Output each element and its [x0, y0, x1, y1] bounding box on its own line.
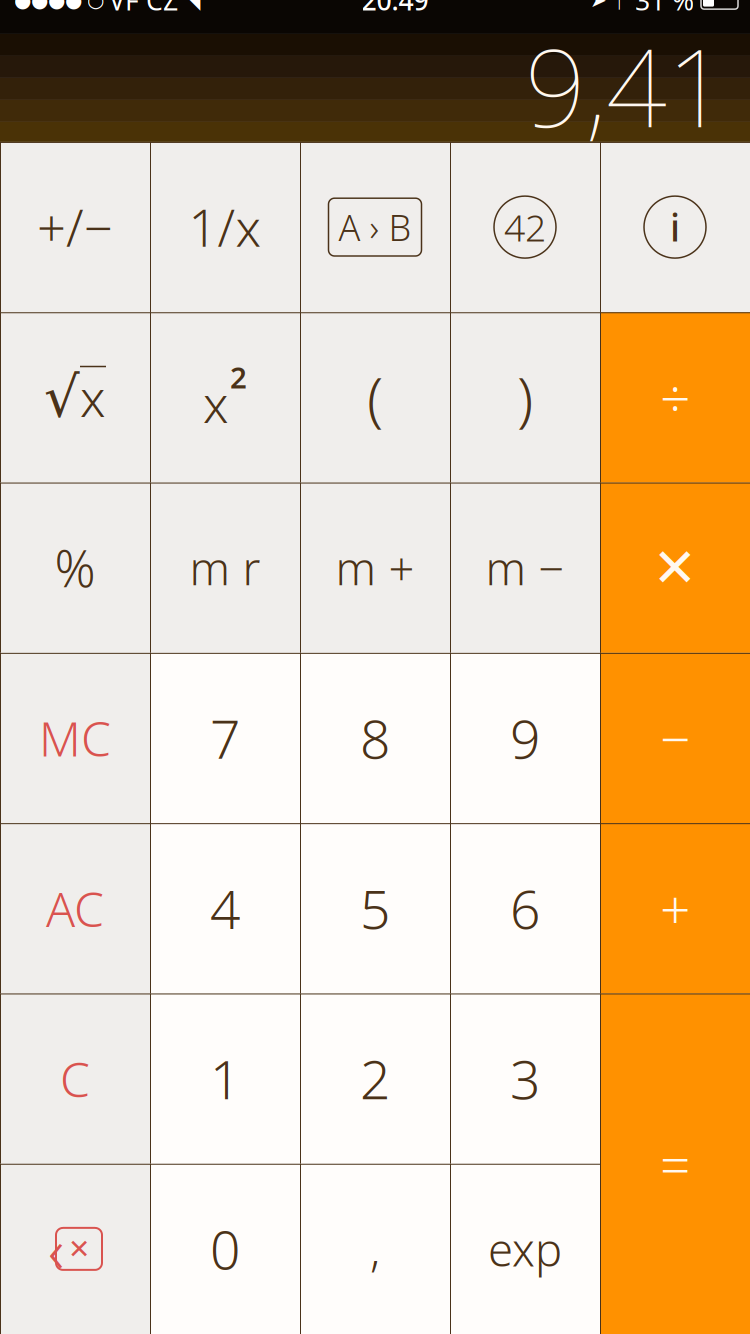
- staticText: +/−: [37, 193, 113, 261]
- staticText: m r: [189, 538, 260, 598]
- button[interactable]: 42: [450, 142, 600, 312]
- button[interactable]: Convert A to B: [300, 142, 450, 312]
- staticText: 3: [510, 1043, 540, 1114]
- staticText: 0: [210, 1213, 240, 1284]
- button[interactable]: 7: [150, 653, 300, 823]
- staticText: 9,41: [525, 15, 728, 157]
- staticText: ‹: [48, 1208, 64, 1290]
- staticText: =: [660, 1128, 690, 1199]
- button[interactable]: Delete: [0, 1164, 150, 1334]
- button[interactable]: Memory recall: [150, 482, 300, 653]
- button[interactable]: Square root: [0, 312, 150, 482]
- button[interactable]: Memory clear: [0, 653, 150, 823]
- staticText: 4: [210, 873, 240, 944]
- staticText: exp: [488, 1219, 562, 1279]
- button[interactable]: 8: [300, 653, 450, 823]
- button[interactable]: 9: [450, 653, 600, 823]
- staticText: 1: [210, 1043, 240, 1114]
- button[interactable]: Plus minus: [0, 142, 150, 312]
- button[interactable]: One over x: [150, 142, 300, 312]
- staticText: +: [660, 873, 690, 944]
- button[interactable]: 5: [300, 823, 450, 993]
- staticText: m +: [335, 538, 414, 598]
- button[interactable]: Decimal separator: [300, 1164, 450, 1334]
- staticText: m −: [485, 538, 564, 598]
- staticText: C: [60, 1047, 90, 1110]
- staticText: x: [203, 370, 229, 437]
- staticText: x: [80, 364, 106, 431]
- staticText: ✕: [68, 1234, 90, 1264]
- staticText: 9: [510, 703, 540, 773]
- staticText: A › B: [338, 203, 411, 251]
- staticText: 8: [360, 703, 390, 773]
- button[interactable]: Plus: [600, 823, 750, 993]
- button[interactable]: All clear: [0, 823, 150, 993]
- button[interactable]: 3: [450, 993, 600, 1164]
- staticText: MC: [39, 706, 111, 770]
- staticText: i: [670, 202, 680, 252]
- button[interactable]: Memory minus: [450, 482, 600, 653]
- button[interactable]: 6: [450, 823, 600, 993]
- staticText: 6: [510, 873, 540, 944]
- staticText: ●●●●: [14, 0, 82, 11]
- button[interactable]: 2: [300, 993, 450, 1164]
- staticText: ○: [87, 0, 104, 11]
- staticText: ): [517, 358, 533, 436]
- button[interactable]: x squared: [150, 312, 300, 482]
- staticText: 20:49: [361, 0, 428, 18]
- staticText: VF CZ: [109, 0, 178, 18]
- staticText: 7: [210, 703, 240, 773]
- staticText: 42: [504, 202, 546, 252]
- staticText: ,: [370, 1219, 380, 1279]
- button[interactable]: Exponent: [450, 1164, 600, 1334]
- staticText: −: [660, 703, 690, 773]
- button[interactable]: Open parenthesis: [300, 312, 450, 482]
- staticText: ᚶ: [614, 0, 628, 12]
- staticText: 5: [360, 873, 390, 944]
- button[interactable]: Info: [600, 142, 750, 312]
- button[interactable]: Equals: [600, 993, 750, 1334]
- button[interactable]: Percent: [0, 482, 150, 653]
- staticText: 2: [230, 358, 247, 397]
- button[interactable]: Multiply: [600, 482, 750, 653]
- staticText: ÷: [660, 362, 690, 433]
- staticText: √: [44, 366, 80, 429]
- staticText: (: [367, 358, 383, 436]
- button[interactable]: Close parenthesis: [450, 312, 600, 482]
- staticText: ✕: [652, 537, 697, 598]
- button[interactable]: 0: [150, 1164, 300, 1334]
- staticText: %: [54, 534, 95, 601]
- staticText: ◥: [183, 0, 200, 13]
- button[interactable]: Memory plus: [300, 482, 450, 653]
- staticText: ➤: [590, 0, 607, 11]
- staticText: 2: [360, 1043, 390, 1114]
- button[interactable]: 4: [150, 823, 300, 993]
- staticText: 1/x: [188, 193, 261, 261]
- staticText: 31 %: [635, 0, 694, 18]
- button[interactable]: Clear: [0, 993, 150, 1164]
- button[interactable]: Divide: [600, 312, 750, 482]
- button[interactable]: 1: [150, 993, 300, 1164]
- staticText: AC: [46, 876, 104, 940]
- button[interactable]: Minus: [600, 653, 750, 823]
